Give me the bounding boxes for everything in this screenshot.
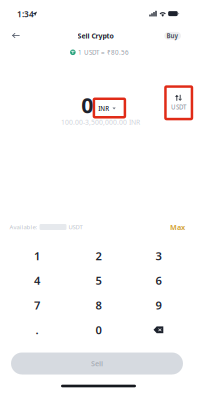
- staticText: .: [35, 322, 38, 337]
- staticText: 0: [81, 90, 93, 120]
- button[interactable]: 2: [70, 245, 126, 267]
- staticText: 9: [155, 298, 161, 313]
- staticText: 5: [95, 273, 101, 288]
- button[interactable]: 1: [9, 245, 65, 267]
- staticText: Sell: [91, 359, 103, 368]
- button[interactable]: Switch to USDT: [167, 91, 189, 115]
- staticText: USDT: [171, 103, 186, 111]
- button[interactable]: 9: [130, 294, 186, 316]
- button[interactable]: .: [9, 319, 65, 341]
- button[interactable]: Sell: [11, 352, 183, 374]
- button[interactable]: 6: [130, 269, 186, 291]
- staticText: 1 USDT = ₹80.56: [78, 48, 129, 56]
- button[interactable]: Back: [5, 26, 27, 46]
- staticText: Sell Crypto: [77, 31, 113, 40]
- button[interactable]: Buy: [164, 32, 181, 40]
- staticText: 1:34: [17, 8, 34, 20]
- staticText: 4: [34, 273, 40, 288]
- staticText: 7: [34, 298, 40, 313]
- staticText: USDT: [68, 223, 82, 231]
- button[interactable]: 0: [70, 319, 126, 341]
- staticText: Max: [170, 222, 185, 232]
- staticText: Buy: [167, 32, 179, 40]
- button[interactable]: 7: [9, 294, 65, 316]
- button[interactable]: 8: [70, 294, 126, 316]
- staticText: Available:: [9, 223, 37, 231]
- button[interactable]: Delete: [130, 319, 186, 341]
- staticText: 1: [34, 248, 40, 264]
- button[interactable]: Max: [168, 222, 186, 233]
- staticText: 0: [95, 322, 101, 337]
- staticText: 2: [95, 248, 101, 264]
- staticText: 6: [155, 273, 161, 288]
- staticText: 8: [95, 298, 101, 313]
- staticText: 100.00-3,500,000.00 INR: [61, 117, 140, 127]
- button[interactable]: 5: [70, 269, 126, 291]
- staticText: INR: [98, 104, 109, 113]
- button[interactable]: 3: [130, 245, 186, 267]
- staticText: 3: [155, 248, 161, 264]
- button[interactable]: 4: [9, 269, 65, 291]
